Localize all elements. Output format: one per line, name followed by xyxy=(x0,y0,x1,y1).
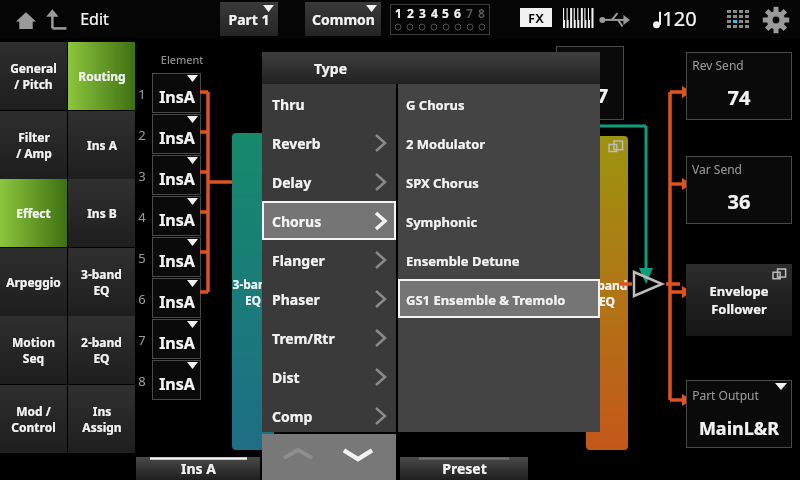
staticText: 1 xyxy=(395,5,402,21)
button[interactable]: Up one level xyxy=(44,6,72,34)
button[interactable]: Envelope Follower xyxy=(686,264,792,336)
button[interactable]: InsA xyxy=(152,278,201,318)
staticText: 4 xyxy=(431,5,438,21)
staticText: 3-band EQ xyxy=(81,266,122,298)
button[interactable]: Ins A xyxy=(68,111,135,179)
staticText: Ins Assign xyxy=(82,403,122,435)
button[interactable]: InsA xyxy=(152,237,201,277)
staticText: 3-band EQ xyxy=(232,276,274,308)
staticText: Effect xyxy=(16,205,51,221)
button[interactable]: Part Output xyxy=(686,380,792,448)
staticText: Arpeggio xyxy=(6,274,61,290)
button[interactable]: G Chorus xyxy=(398,84,600,123)
button[interactable]: Rev Send xyxy=(686,52,792,120)
button[interactable]: Filter / Amp xyxy=(0,111,67,179)
staticText: FX xyxy=(528,9,544,27)
staticText: Comp xyxy=(272,407,313,426)
staticText: Type xyxy=(314,59,347,78)
button[interactable]: Thru xyxy=(262,84,396,123)
button[interactable]: Routing xyxy=(68,42,135,110)
button[interactable]: Ins Assign xyxy=(68,385,135,453)
button[interactable]: InsA xyxy=(152,196,201,236)
button[interactable]: Symphonic xyxy=(398,201,600,240)
staticText: Flanger xyxy=(272,251,325,270)
button[interactable]: GS1 Ensemble & Tremolo xyxy=(398,279,600,318)
button[interactable]: InsA xyxy=(152,73,201,113)
button[interactable]: InsA xyxy=(152,155,201,195)
staticText: Part 1 xyxy=(228,10,270,29)
staticText: MainL&R xyxy=(686,416,792,441)
staticText: Preset xyxy=(442,459,487,478)
staticText: General / Pitch xyxy=(10,60,57,92)
staticText: Rev Send xyxy=(692,57,744,73)
button[interactable]: Keyboard xyxy=(562,8,594,28)
staticText: Edit xyxy=(80,8,109,30)
staticText: 7 xyxy=(466,5,473,21)
button[interactable]: Dist xyxy=(262,357,396,396)
staticText: InsA xyxy=(159,250,195,272)
button[interactable]: Part select 1 to 8 xyxy=(390,4,490,35)
staticText: Element xyxy=(152,52,212,67)
staticText: Trem/Rtr xyxy=(272,329,335,348)
button[interactable]: InsA xyxy=(152,360,201,400)
staticText: InsA xyxy=(159,127,195,149)
button[interactable]: Var Send xyxy=(686,156,792,224)
button[interactable]: InsA xyxy=(152,114,201,154)
button[interactable]: Effect xyxy=(0,179,67,247)
staticText: 2 xyxy=(136,126,148,144)
staticText: Ins B xyxy=(87,205,117,221)
button[interactable]: Motion Seq xyxy=(0,316,67,384)
button[interactable]: Dry Lvl xyxy=(556,46,624,120)
staticText: Common xyxy=(312,10,375,29)
staticText: SPX Chorus xyxy=(406,174,479,192)
button[interactable]: Home xyxy=(12,6,40,34)
staticText: 8 xyxy=(478,5,485,21)
button[interactable]: Ins A xyxy=(136,457,260,480)
button[interactable]: Reverb xyxy=(262,123,396,162)
button[interactable]: Scroll up xyxy=(276,442,320,468)
staticText: Ins A xyxy=(181,459,216,478)
staticText: 120 xyxy=(662,5,697,32)
button[interactable]: 2-band EQ xyxy=(586,136,628,450)
button[interactable]: FX xyxy=(520,8,552,27)
button[interactable]: Delay xyxy=(262,162,396,201)
button[interactable]: USB xyxy=(600,10,630,28)
staticText: Envelope Follower xyxy=(686,282,792,318)
staticText: Motion Seq xyxy=(0,334,67,366)
staticText: 74 xyxy=(686,84,792,111)
staticText: 2-band EQ xyxy=(81,334,122,366)
button[interactable]: SPX Chorus xyxy=(398,162,600,201)
button[interactable]: Arpeggio xyxy=(0,248,67,316)
button[interactable]: General / Pitch xyxy=(0,42,67,110)
button[interactable]: Preset xyxy=(400,457,528,480)
button[interactable]: Trem/Rtr xyxy=(262,318,396,357)
button[interactable]: 2-band EQ xyxy=(68,316,135,384)
staticText: Ensemble Detune xyxy=(406,252,520,270)
button[interactable]: Scroll down xyxy=(336,442,380,468)
staticText: InsA xyxy=(159,332,195,354)
button[interactable]: 2 Modulator xyxy=(398,123,600,162)
button[interactable]: Flanger xyxy=(262,240,396,279)
button[interactable]: Tempo 120 xyxy=(652,5,697,32)
button[interactable]: Mod / Control xyxy=(0,385,67,453)
staticText: InsA xyxy=(159,291,195,313)
button[interactable]: Ensemble Detune xyxy=(398,240,600,279)
button[interactable]: Part 1 xyxy=(220,2,278,36)
button[interactable]: Common xyxy=(305,2,381,36)
button[interactable]: Phaser xyxy=(262,279,396,318)
staticText: 4 xyxy=(136,208,148,226)
staticText: Filter / Amp xyxy=(16,129,52,161)
button[interactable]: Settings xyxy=(764,8,788,32)
staticText: 3 xyxy=(419,5,426,21)
button[interactable]: Quick setup grid xyxy=(726,9,750,29)
button[interactable]: 3-band EQ xyxy=(232,133,274,450)
staticText: Phaser xyxy=(272,290,320,309)
staticText: InsA xyxy=(159,168,195,190)
button[interactable]: Comp xyxy=(262,396,396,435)
staticText: 2 xyxy=(407,5,414,21)
button[interactable]: InsA xyxy=(152,319,201,359)
button[interactable]: 3-band EQ xyxy=(68,248,135,316)
button[interactable]: Ins B xyxy=(68,179,135,247)
button[interactable]: Chorus xyxy=(262,201,396,240)
staticText: Part Output xyxy=(692,387,759,403)
